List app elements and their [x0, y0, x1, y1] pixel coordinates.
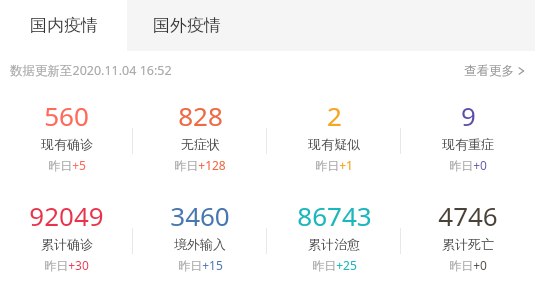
staticText: 昨日+0 [449, 157, 487, 173]
staticText: 昨日+0 [449, 257, 487, 273]
staticText: 累计治愈 [308, 236, 360, 252]
staticText: 昨日+128 [174, 157, 226, 173]
staticText: 4746 [438, 198, 498, 233]
staticText: 昨日+1 [315, 157, 353, 173]
button[interactable]: 查看更多 [464, 63, 525, 79]
staticText: 现有疑似 [308, 136, 360, 152]
staticText: 昨日+5 [48, 157, 86, 173]
staticText: 3460 [170, 198, 230, 233]
button[interactable]: 国外疫情 [127, 0, 247, 51]
button[interactable]: 560 [0, 98, 133, 176]
button[interactable]: 3460 [133, 198, 267, 276]
staticText: 国内疫情 [30, 15, 98, 36]
button[interactable]: 828 [133, 98, 267, 176]
staticText: 9 [461, 98, 476, 133]
staticText: 数据更新至2020.11.04 16:52 [10, 62, 172, 79]
button[interactable]: 2 [267, 98, 401, 176]
staticText: 无症状 [181, 136, 220, 152]
staticText: 560 [44, 98, 89, 133]
button[interactable]: 9 [401, 98, 535, 176]
staticText: 昨日+25 [312, 257, 357, 273]
staticText: 现有重症 [442, 136, 494, 152]
staticText: 昨日+30 [44, 257, 89, 273]
staticText: 境外输入 [174, 236, 226, 252]
staticText: 累计死亡 [442, 236, 494, 252]
staticText: 2 [327, 98, 342, 133]
button[interactable]: 86743 [267, 198, 401, 276]
button[interactable]: 92049 [0, 198, 133, 276]
button[interactable]: 国内疫情 [0, 0, 127, 51]
staticText: 828 [178, 98, 223, 133]
button[interactable]: 4746 [401, 198, 535, 276]
staticText: 累计确诊 [41, 236, 93, 252]
staticText: 昨日+15 [178, 257, 223, 273]
staticText: 现有确诊 [41, 136, 93, 152]
staticText: 92049 [29, 198, 104, 233]
staticText: 86743 [297, 198, 372, 233]
staticText: 查看更多 [464, 63, 514, 79]
staticText: 国外疫情 [153, 15, 221, 36]
